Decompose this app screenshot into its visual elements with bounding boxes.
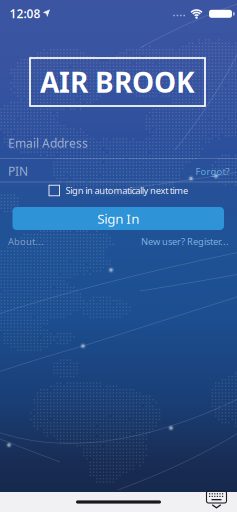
button[interactable]: About...	[8, 232, 44, 251]
button[interactable]: Dismiss Keyboard	[204, 491, 228, 511]
staticText: Sign In	[97, 210, 139, 227]
button[interactable]: Email Address	[0, 129, 237, 159]
staticText: AIR BROOK	[40, 63, 195, 101]
button[interactable]: PIN	[0, 160, 237, 186]
staticText: New user? Register...	[141, 235, 229, 248]
staticText: Email Address	[8, 135, 88, 151]
button[interactable]: Sign in automatically next time	[49, 184, 188, 197]
button[interactable]: Sign In	[12, 207, 224, 230]
staticText: 12:08	[9, 5, 40, 21]
staticText: Forgot?	[195, 165, 229, 178]
staticText: PIN	[8, 163, 28, 179]
staticText: About...	[8, 235, 44, 248]
button[interactable]: New user? Register...	[141, 232, 229, 251]
staticText: Sign in automatically next time	[65, 184, 188, 197]
button[interactable]: Forgot?	[191, 161, 233, 182]
